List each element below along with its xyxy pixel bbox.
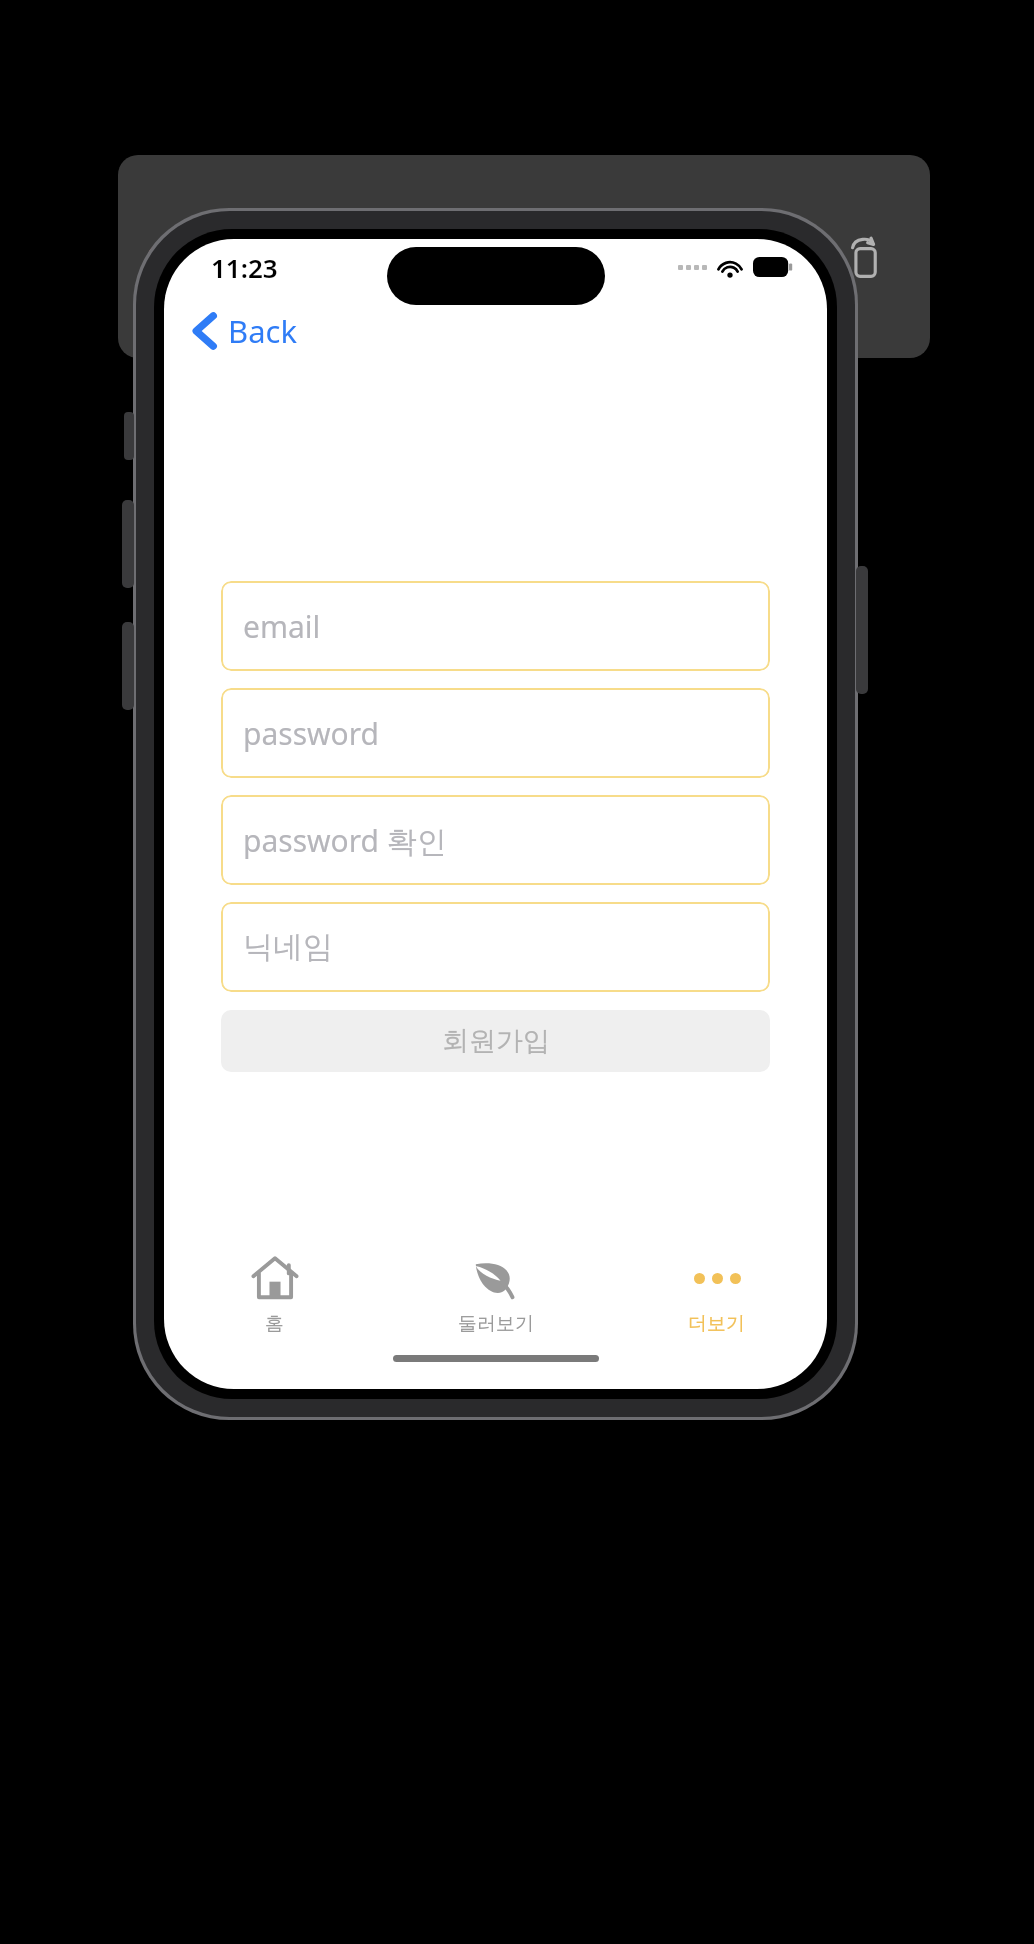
staticText: password 확인 <box>243 820 447 861</box>
button[interactable]: Silence switch <box>124 412 134 460</box>
staticText: 닉네임 <box>243 928 333 966</box>
button[interactable]: 홈 <box>164 1239 385 1349</box>
button[interactable]: password 확인 <box>221 795 770 885</box>
staticText: email <box>243 606 321 647</box>
button[interactable]: Maximize <box>236 244 262 270</box>
button[interactable]: Screenshot <box>748 229 804 285</box>
staticText: 11:23 <box>211 250 278 285</box>
button[interactable]: Power <box>856 566 868 694</box>
staticText: 둘러보기 <box>458 1312 534 1336</box>
button[interactable]: Back <box>192 295 297 367</box>
button[interactable]: Minimize <box>192 244 218 270</box>
staticText: 홈 <box>265 1312 284 1336</box>
button[interactable]: Volume up <box>122 500 134 588</box>
button[interactable]: 둘러보기 <box>385 1239 606 1349</box>
staticText: password <box>243 713 379 754</box>
button[interactable]: password <box>221 688 770 778</box>
button[interactable]: Rotate <box>838 229 894 285</box>
button[interactable]: Close <box>148 244 174 270</box>
staticText: iPhone 14 Pro <box>300 218 511 260</box>
button[interactable]: 더보기 <box>606 1239 827 1349</box>
staticText: iOS 16.1 <box>300 264 389 295</box>
staticText: 회원가입 <box>442 1024 550 1058</box>
staticText: Back <box>228 310 297 352</box>
button[interactable]: Volume down <box>122 622 134 710</box>
button[interactable]: email <box>221 581 770 671</box>
button[interactable]: Home <box>658 229 714 285</box>
button[interactable]: 회원가입 <box>221 1010 770 1072</box>
staticText: 더보기 <box>688 1312 745 1336</box>
button[interactable]: 닉네임 <box>221 902 770 992</box>
